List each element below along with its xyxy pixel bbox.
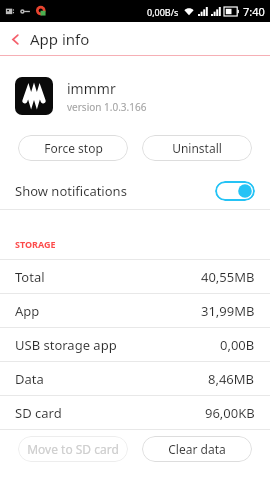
staticText: USB storage app: [15, 336, 117, 354]
staticText: 31,99MB: [201, 302, 255, 320]
staticText: 96,00KB: [205, 404, 255, 422]
staticText: 0,00B: [220, 336, 255, 354]
staticText: Force stop: [44, 140, 103, 156]
staticText: 40,55MB: [201, 268, 255, 286]
button[interactable]: Total: [0, 260, 270, 293]
staticText: 0,00B/s: [147, 6, 179, 18]
staticText: Show notifications: [15, 182, 127, 200]
staticText: Move to SD card: [27, 441, 119, 457]
button[interactable]: Data: [0, 362, 270, 395]
staticText: 8,46MB: [208, 370, 255, 388]
staticText: Data: [15, 370, 44, 388]
button[interactable]: USB storage app: [0, 328, 270, 361]
staticText: App: [15, 302, 40, 320]
staticText: version 1.0.3.166: [67, 100, 147, 114]
button[interactable]: Uninstall: [142, 135, 252, 161]
button[interactable]: Back: [0, 24, 30, 54]
staticText: Uninstall: [172, 140, 222, 156]
button[interactable]: Move to SD card: [18, 436, 128, 462]
button[interactable]: App: [0, 294, 270, 327]
staticText: 7:40: [243, 4, 265, 19]
staticText: Total: [15, 268, 45, 286]
button[interactable]: Show notifications: [0, 173, 270, 209]
staticText: immmr: [67, 79, 116, 98]
button[interactable]: SD card: [0, 396, 270, 429]
button[interactable]: Clear data: [142, 436, 252, 462]
staticText: App info: [30, 29, 90, 49]
staticText: SD card: [15, 404, 62, 422]
staticText: Clear data: [168, 441, 226, 457]
button[interactable]: Force stop: [18, 135, 128, 161]
staticText: STORAGE: [15, 238, 56, 250]
